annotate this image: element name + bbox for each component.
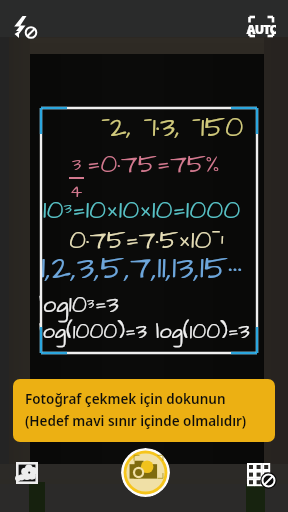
staticText: Fotoğraf çekmek için dokunun (Hedef mavi… [25, 390, 247, 430]
button[interactable]: Gallery [16, 462, 38, 484]
button[interactable]: Flash off [12, 13, 40, 41]
button[interactable]: Grid off [247, 462, 277, 492]
staticText: 10³=10×10×10=1000 [43, 191, 241, 229]
staticText: log10³=3 [39, 288, 119, 321]
staticText: ¯2, ¯1·3, ¯150 [101, 107, 244, 147]
button[interactable]: Auto flash mode [246, 14, 276, 44]
staticText: log(1000)=3 log(100)=3 [39, 316, 250, 347]
button[interactable]: Fotoğraf çekmek için dokunun (Hedef mavi… [13, 379, 275, 442]
staticText: 4 [70, 179, 83, 204]
staticText: =0·75=75% [87, 145, 220, 183]
staticText: AUTO [246, 21, 276, 38]
staticText: 0·75=7·5×10⁻¹ [69, 219, 224, 259]
staticText: 3 [72, 152, 82, 177]
button[interactable]: Take photo [121, 448, 170, 497]
staticText: 1,2,3,5,7,11,13,15··· [41, 244, 243, 291]
